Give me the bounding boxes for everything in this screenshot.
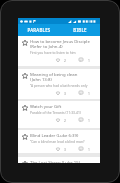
button[interactable]: Comment	[79, 58, 92, 63]
staticText: 1	[88, 58, 90, 62]
staticText: Watch your Gift	[30, 103, 62, 109]
staticText: Blind Leader (Luke 6:39)	[30, 132, 79, 138]
button[interactable]: Comment	[79, 147, 92, 152]
other: Comment	[79, 118, 83, 122]
other: Comment	[79, 58, 83, 62]
button[interactable]: Favourite	[18, 130, 100, 153]
other: Favourite	[22, 40, 28, 46]
other: Favourite	[22, 73, 28, 79]
other: Like	[56, 58, 60, 62]
staticText: 2	[64, 58, 66, 62]
other: Comment	[79, 91, 83, 95]
staticText: 3	[64, 147, 66, 151]
other: Like	[56, 147, 60, 151]
other: Favourite	[22, 134, 28, 140]
staticText: How to become Jesus Disciple (Refer to J…	[30, 38, 90, 49]
button[interactable]: Favourite	[18, 36, 100, 66]
other: Favourite	[22, 161, 28, 163]
staticText: 1	[88, 91, 90, 95]
other: Favourite	[22, 105, 28, 111]
button[interactable]: Like	[56, 147, 69, 152]
other: Like	[56, 91, 60, 95]
staticText: BIBLE	[73, 27, 87, 33]
staticText: 1	[88, 147, 90, 151]
button[interactable]: Favourite	[18, 101, 100, 128]
button[interactable]: Comment	[79, 118, 92, 123]
button[interactable]: PARABLES	[18, 24, 59, 36]
button[interactable]: Like	[56, 118, 69, 123]
staticText: The Lost Sheep (Luke 15)	[30, 159, 81, 163]
button[interactable]: Favourite	[18, 69, 100, 99]
other: Comment	[79, 147, 83, 151]
button[interactable]: BIBLE	[59, 24, 100, 36]
staticText: First you have to listen to him	[30, 50, 76, 54]
staticText: PARABLES	[27, 27, 51, 33]
staticText: Meaning of being clean (John 13:8)	[30, 71, 78, 82]
staticText: 3	[64, 91, 66, 95]
staticText: “A person who had a bath needs only	[30, 83, 88, 87]
staticText: Parable of the Tenants (11:33-41)	[30, 110, 81, 114]
button[interactable]: Like	[56, 58, 69, 63]
button[interactable]: Like	[56, 91, 69, 96]
button[interactable]: Comment	[79, 91, 92, 96]
staticText: 2	[64, 118, 66, 122]
staticText: “Can a blind man lead a blind man?	[30, 139, 85, 143]
other: Like	[56, 118, 60, 122]
staticText: 1	[88, 118, 90, 122]
button[interactable]: Favourite	[18, 157, 100, 163]
